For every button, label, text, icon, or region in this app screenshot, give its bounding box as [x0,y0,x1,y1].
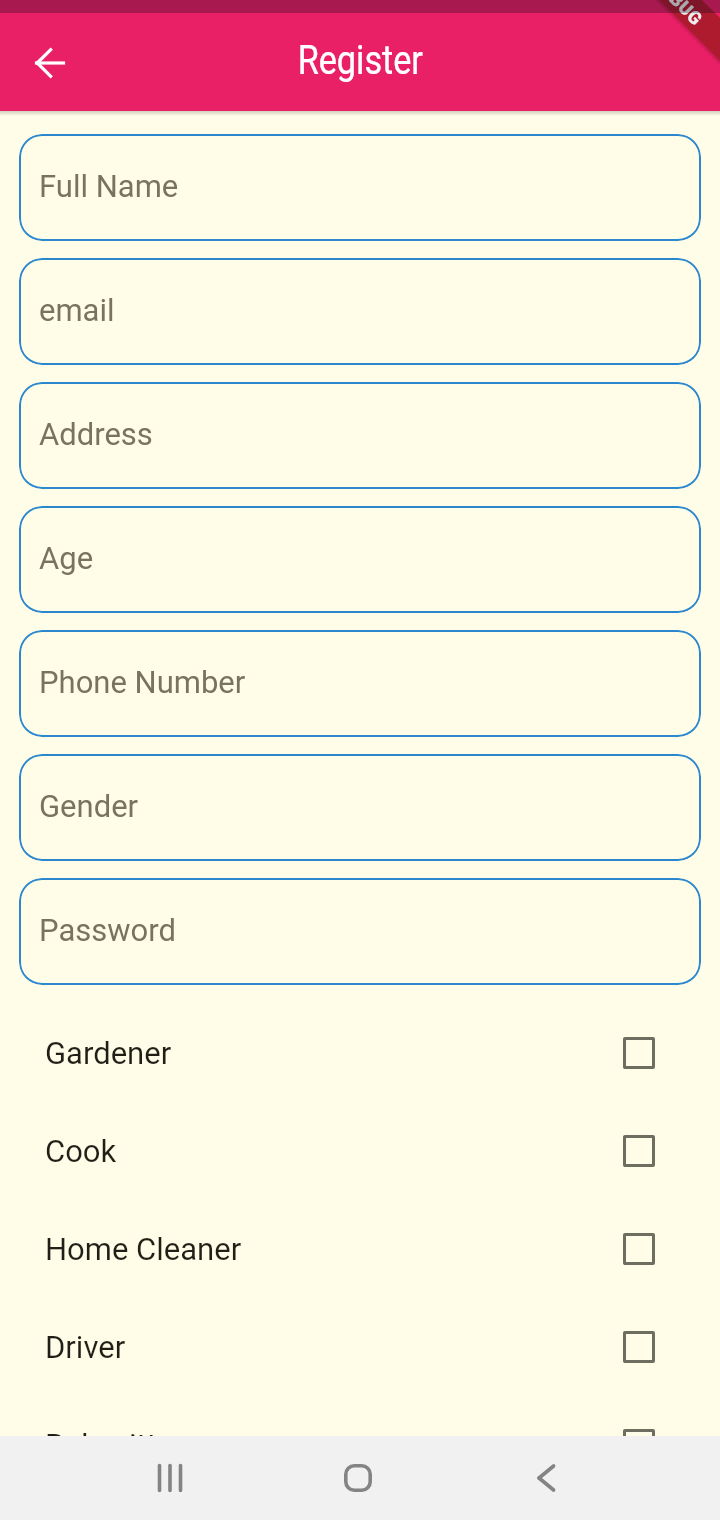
staticText: Cook [45,1133,117,1169]
button[interactable]: Back [14,27,86,99]
staticText: Address [39,416,153,452]
staticText: Age [39,540,94,576]
staticText: Phone Number [39,664,246,700]
button[interactable]: Age [19,506,701,613]
button[interactable]: Back [503,1436,593,1520]
button[interactable]: Home [313,1436,403,1520]
button[interactable]: Password [19,878,701,985]
staticText: Full Name [39,168,179,204]
button[interactable]: Babysitter [0,1396,720,1436]
button[interactable]: Gender [19,754,701,861]
staticText: Driver [45,1329,126,1365]
staticText: Register [298,37,423,84]
staticText: Gender [39,788,139,824]
button[interactable]: Home Cleaner [0,1200,720,1298]
button[interactable]: Full Name [19,134,701,241]
button[interactable]: Cook [0,1102,720,1200]
button[interactable]: Address [19,382,701,489]
staticText: Gardener [45,1035,172,1071]
staticText: Home Cleaner [45,1231,242,1267]
button[interactable]: email [19,258,701,365]
button[interactable]: Driver [0,1298,720,1396]
staticText: Password [39,912,176,948]
staticText: email [39,292,115,328]
staticText: Babysitter [45,1427,184,1436]
button[interactable]: Recent apps [125,1436,215,1520]
button[interactable]: Gardener [0,1004,720,1102]
button[interactable]: Phone Number [19,630,701,737]
